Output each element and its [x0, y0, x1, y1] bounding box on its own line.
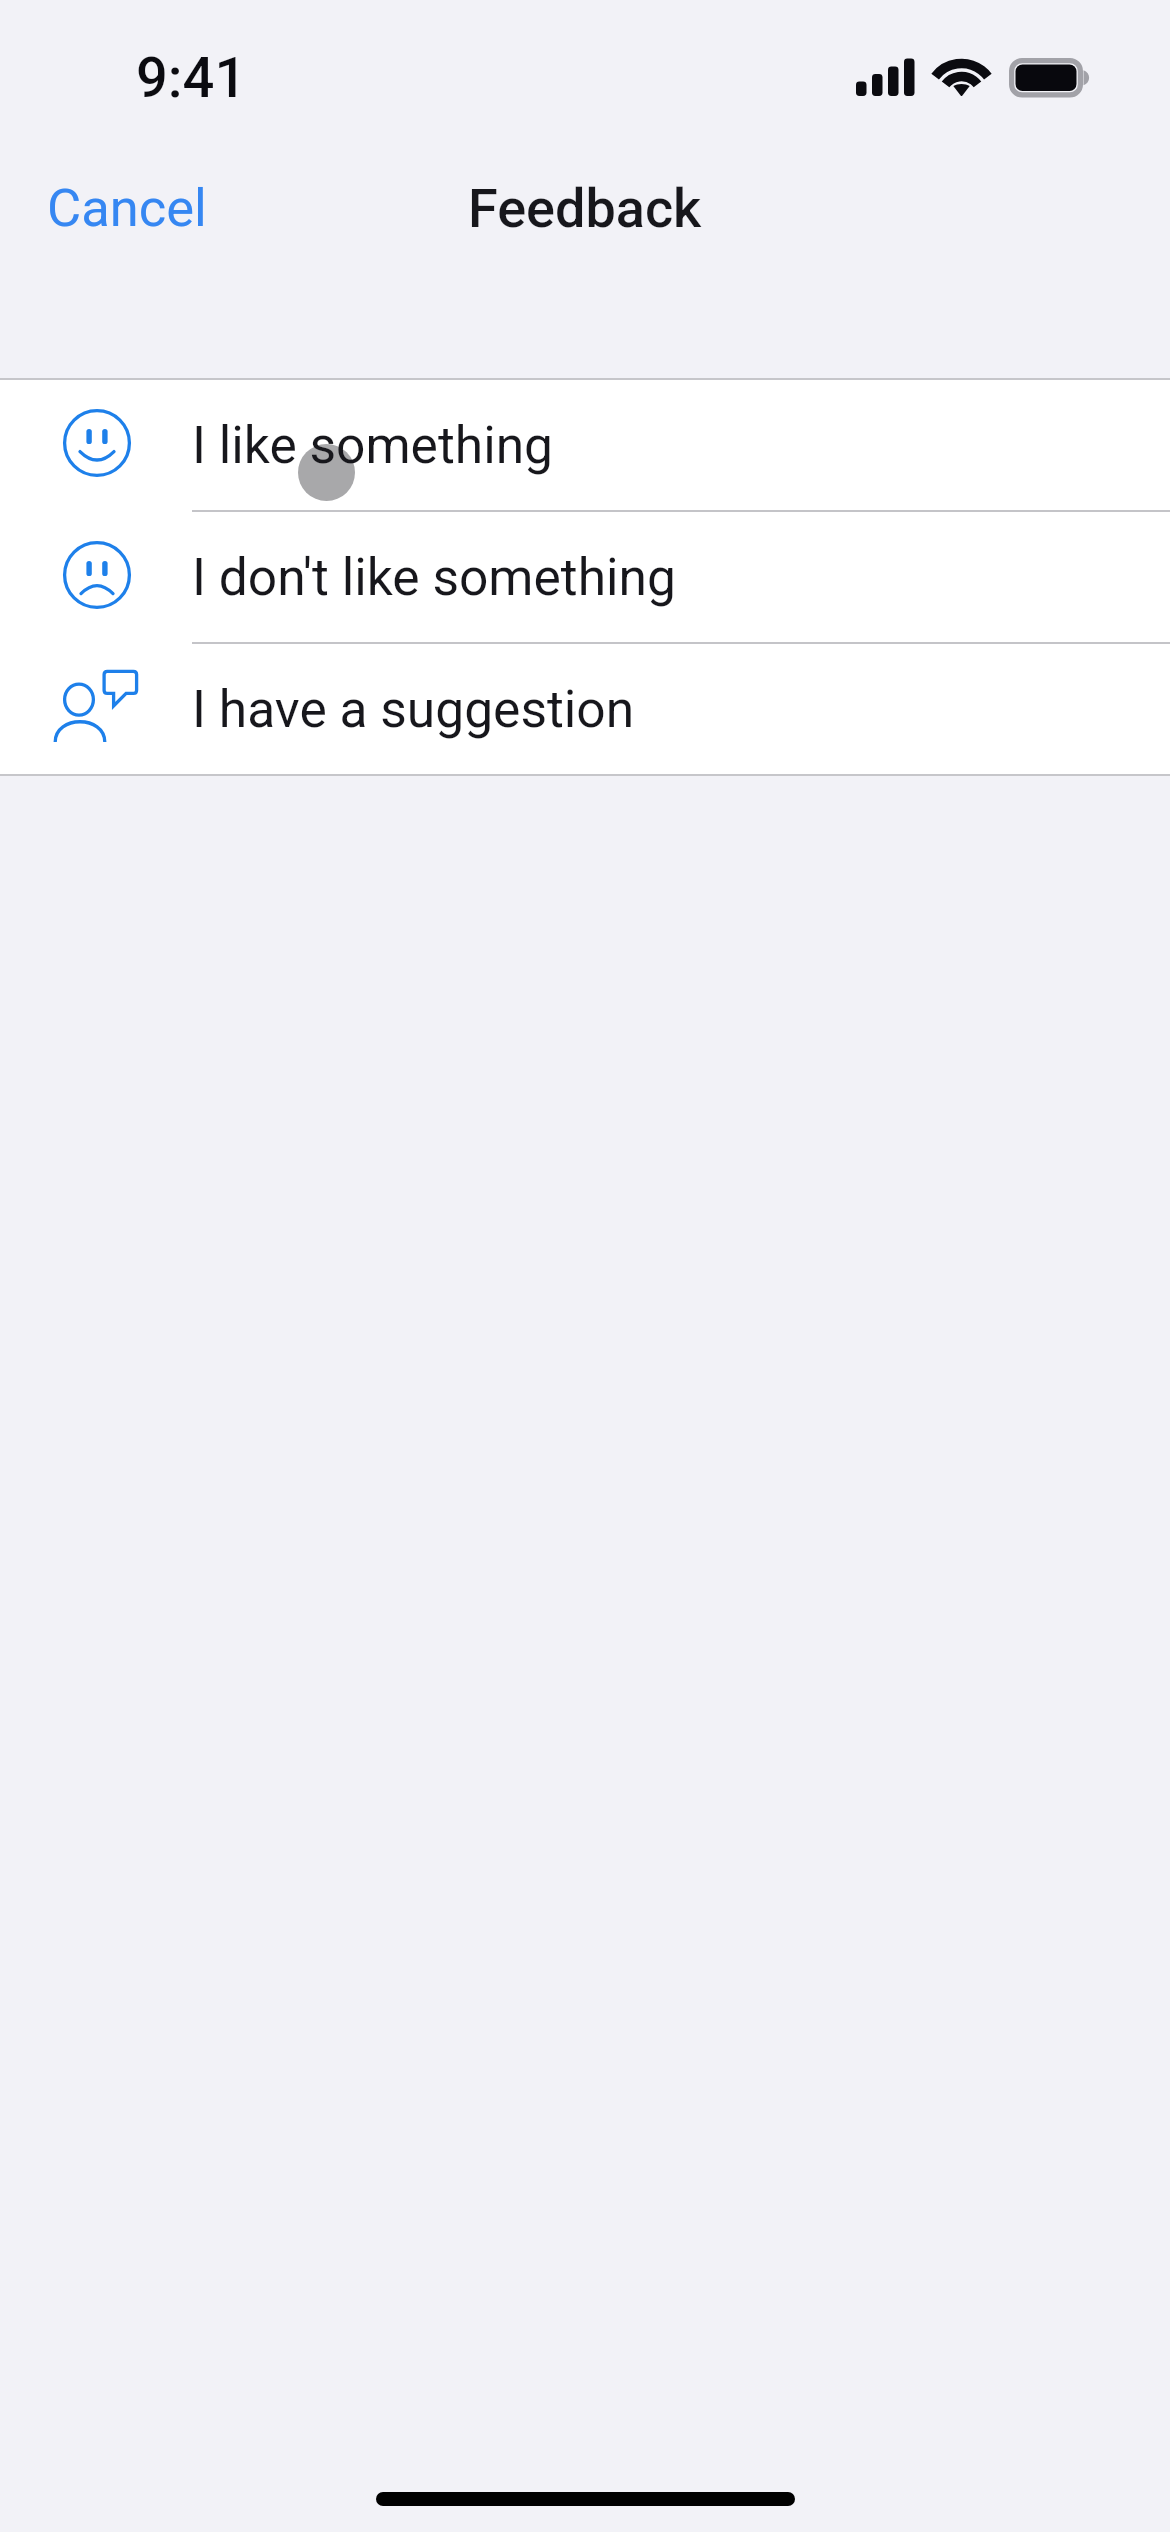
staticText: Cancel	[47, 177, 207, 239]
staticText: I have a suggestion	[192, 679, 635, 739]
button[interactable]: Cancel	[23, 163, 231, 253]
other: Cellular signal strength	[856, 58, 915, 96]
other: Sad face	[61, 539, 133, 611]
other: Happy face	[61, 407, 133, 479]
other: Person with speech bubble	[51, 661, 143, 745]
staticText: Feedback	[468, 177, 702, 240]
other: Wi-Fi connected	[934, 56, 989, 97]
staticText: 9:41	[136, 45, 247, 111]
button[interactable]: Person with speech bubble	[0, 644, 1170, 774]
staticText: I don't like something	[192, 547, 676, 607]
other: Battery full	[1009, 58, 1093, 98]
button[interactable]: Sad face	[0, 512, 1170, 642]
button[interactable]: Happy face	[0, 380, 1170, 510]
staticText: I like something	[192, 415, 554, 475]
